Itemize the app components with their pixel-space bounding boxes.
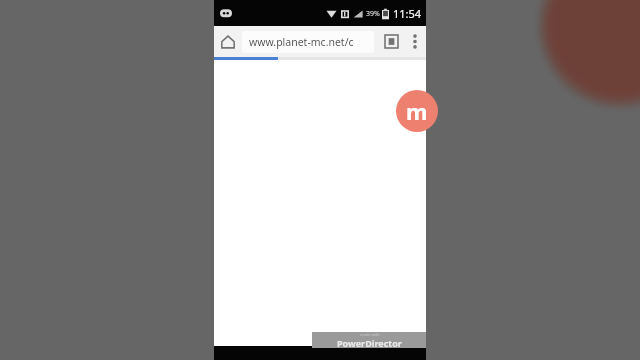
staticText: www.planet-mc.net/c — [249, 35, 354, 49]
staticText: PowerDirector — [337, 337, 402, 348]
staticText: m — [406, 96, 428, 126]
staticText: made with — [360, 332, 380, 337]
button[interactable]: Tabs — [378, 26, 404, 57]
button[interactable]: More options — [404, 26, 426, 57]
button[interactable]: www.planet-mc.net/c — [242, 31, 374, 53]
button[interactable]: Home — [214, 26, 242, 57]
staticText: 11:54 — [393, 6, 422, 21]
staticText: 39% — [366, 9, 380, 19]
